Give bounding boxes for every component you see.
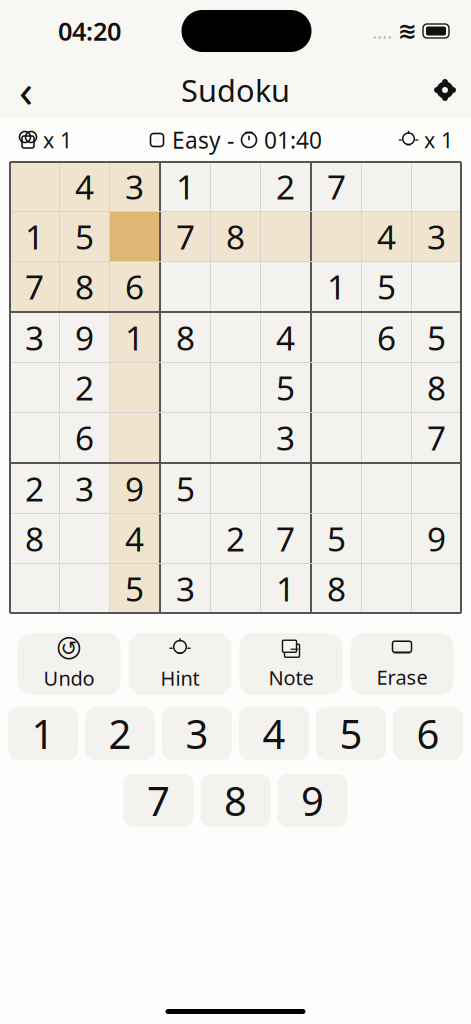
button[interactable]: 1	[161, 162, 210, 211]
button[interactable]: 6	[60, 413, 109, 462]
button[interactable]: 2	[211, 514, 260, 563]
button[interactable]	[211, 564, 260, 613]
button[interactable]: Settings	[419, 67, 471, 113]
button[interactable]: 6	[110, 262, 159, 311]
button[interactable]: 5	[261, 363, 310, 412]
button[interactable]: Note	[239, 633, 342, 695]
button[interactable]: 8	[200, 774, 270, 827]
button[interactable]: 5	[312, 514, 361, 563]
button[interactable]: 1	[10, 212, 59, 261]
staticText: 8	[75, 264, 94, 309]
button[interactable]: Erase	[350, 633, 453, 695]
button[interactable]: 5	[161, 464, 210, 513]
button[interactable]	[10, 162, 59, 211]
button[interactable]: 3	[161, 564, 210, 613]
button[interactable]: Hints remaining	[398, 120, 471, 160]
button[interactable]	[10, 413, 59, 462]
button[interactable]: 5	[362, 262, 411, 311]
button[interactable]: 4	[239, 707, 309, 760]
button[interactable]: 5	[412, 313, 461, 362]
button[interactable]: 4	[261, 313, 310, 362]
button[interactable]: 8	[60, 262, 109, 311]
button[interactable]	[362, 162, 411, 211]
button[interactable]: 6	[362, 313, 411, 362]
button[interactable]	[412, 162, 461, 211]
button[interactable]: 3	[10, 313, 59, 362]
button[interactable]: 8	[10, 514, 59, 563]
button[interactable]: 3	[60, 464, 109, 513]
button[interactable]: 7	[312, 162, 361, 211]
button[interactable]: 1	[8, 707, 78, 760]
button[interactable]: Lives remaining	[0, 120, 72, 160]
button[interactable]: 4	[362, 212, 411, 261]
button[interactable]: 7	[261, 514, 310, 563]
button[interactable]: 2	[10, 464, 59, 513]
button[interactable]: 6	[393, 707, 463, 760]
button[interactable]: Back	[0, 67, 52, 113]
button[interactable]: 9	[60, 313, 109, 362]
button[interactable]: 2	[261, 162, 310, 211]
staticText: 7	[176, 214, 195, 259]
button[interactable]: 8	[412, 363, 461, 412]
button[interactable]: 8	[312, 564, 361, 613]
button[interactable]: 3	[261, 413, 310, 462]
button[interactable]: 9	[110, 464, 159, 513]
button[interactable]: 8	[211, 212, 260, 261]
button[interactable]: 4	[110, 514, 159, 563]
button[interactable]: 1	[261, 564, 310, 613]
button[interactable]: ↺	[17, 633, 120, 695]
button[interactable]: 7	[10, 262, 59, 311]
button[interactable]: 2	[85, 707, 155, 760]
button[interactable]	[10, 564, 59, 613]
button[interactable]	[10, 363, 59, 412]
button[interactable]: 1	[110, 313, 159, 362]
button[interactable]: 5	[60, 212, 109, 261]
button[interactable]: 2	[60, 363, 109, 412]
button[interactable]: 5	[316, 707, 386, 760]
button[interactable]: 4	[60, 162, 109, 211]
button[interactable]: 3	[162, 707, 232, 760]
button[interactable]	[412, 464, 461, 513]
button[interactable]: 9	[277, 774, 347, 827]
button[interactable]: 5	[110, 564, 159, 613]
button[interactable]: 7	[123, 774, 193, 827]
button[interactable]	[362, 564, 411, 613]
button[interactable]: 7	[161, 212, 210, 261]
button[interactable]	[60, 564, 109, 613]
button[interactable]: Hint	[128, 633, 231, 695]
button[interactable]: 3	[110, 162, 159, 211]
button[interactable]	[211, 162, 260, 211]
button[interactable]: 8	[161, 313, 210, 362]
button[interactable]	[412, 262, 461, 311]
button[interactable]: 7	[412, 413, 461, 462]
button[interactable]: 9	[412, 514, 461, 563]
button[interactable]: 3	[412, 212, 461, 261]
button[interactable]	[412, 564, 461, 613]
button[interactable]: 1	[312, 262, 361, 311]
